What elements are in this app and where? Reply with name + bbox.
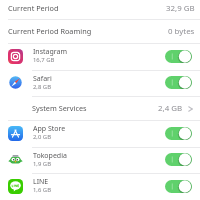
button[interactable]: LINE: [0, 174, 200, 200]
staticText: 16,7 GB: [33, 56, 55, 64]
button[interactable]: Toggle cellular data: [165, 153, 192, 166]
button[interactable]: Instagram: [0, 44, 200, 70]
staticText: 2,8 GB: [33, 83, 51, 91]
button[interactable]: Toggle cellular data: [165, 50, 192, 63]
staticText: 1,6 GB: [33, 186, 51, 194]
button[interactable]: System Services: [0, 97, 200, 120]
staticText: LINE: [33, 177, 49, 187]
staticText: App Store: [33, 124, 66, 134]
button[interactable]: Toggle cellular data: [165, 180, 192, 193]
staticText: 2,4 GB: [158, 103, 183, 114]
staticText: Tokopedia: [33, 151, 67, 161]
button[interactable]: Current Period: [0, 0, 200, 19]
staticText: 32,9 GB: [166, 3, 195, 14]
staticText: Current Period: [8, 3, 59, 13]
staticText: Safari: [33, 74, 52, 84]
staticText: Current Period Roaming: [8, 26, 92, 36]
button[interactable]: Safari: [0, 71, 200, 96]
button[interactable]: Tokopedia: [0, 148, 200, 173]
staticText: System Services: [32, 103, 87, 113]
button[interactable]: App Store: [0, 121, 200, 147]
staticText: 0 bytes: [168, 26, 195, 37]
staticText: Instagram: [33, 47, 68, 57]
staticText: 1,9 GB: [33, 160, 51, 168]
button[interactable]: Current Period Roaming: [0, 20, 200, 43]
button[interactable]: Toggle cellular data: [165, 127, 192, 140]
staticText: 2,0 GB: [33, 133, 51, 141]
button[interactable]: Toggle cellular data: [165, 76, 192, 89]
